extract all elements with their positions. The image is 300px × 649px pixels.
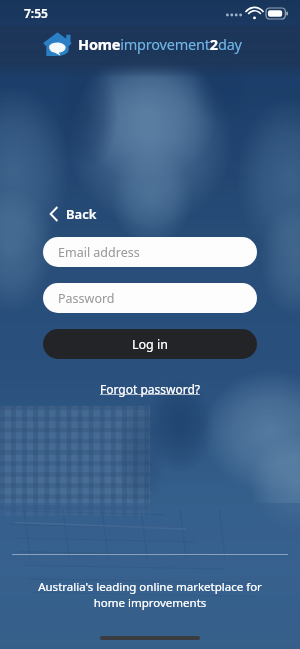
staticText: Email address	[58, 244, 140, 261]
button[interactable]: Email address	[43, 237, 257, 267]
staticText: Homeimprovement2day	[78, 34, 242, 54]
staticText: Password	[58, 290, 115, 307]
staticText: Log in	[132, 336, 169, 353]
staticText: Forgot password?	[100, 381, 201, 397]
staticText: 7:55	[24, 5, 48, 21]
button[interactable]: Forgot password?	[95, 378, 206, 400]
staticText: Back	[66, 205, 97, 223]
staticText: Australia's leading online marketplace f…	[24, 579, 276, 610]
button[interactable]: Password	[43, 283, 257, 313]
button[interactable]: Log in	[43, 329, 257, 359]
button[interactable]: Back	[44, 200, 103, 228]
